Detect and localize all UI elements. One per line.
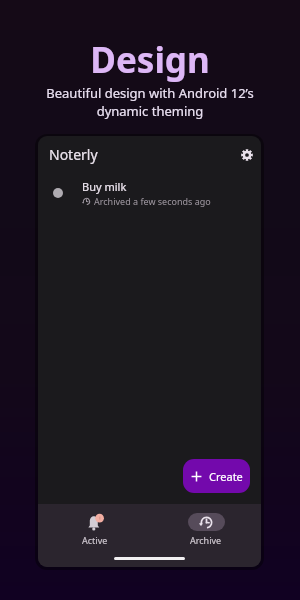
staticText: Design [90,36,210,84]
button[interactable]: Create [183,459,250,493]
staticText: Active [82,534,108,546]
staticText: Buy milk [82,179,127,194]
button[interactable]: Settings [233,141,260,168]
staticText: Archive [190,534,222,546]
staticText: Beautiful design with Android 12’s dynam… [46,84,254,120]
button[interactable]: Active notifications [69,513,121,546]
staticText: Create [209,469,243,484]
staticText: Archived a few seconds ago [94,195,211,207]
button[interactable]: Archive [180,513,232,546]
staticText: Noterly [49,145,98,164]
button[interactable]: Buy milk [38,177,261,208]
